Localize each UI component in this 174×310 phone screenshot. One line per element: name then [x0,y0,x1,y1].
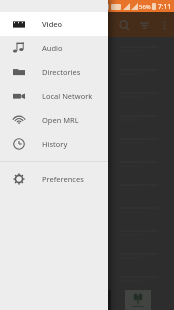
button[interactable] [0,198,174,221]
staticText: 56% [139,3,151,11]
staticText: Local Network [42,91,93,101]
button[interactable]: More options [154,15,174,35]
button[interactable] [0,152,174,175]
button[interactable] [0,83,174,106]
button[interactable]: Preferences [0,167,108,191]
button[interactable] [0,60,174,83]
button[interactable]: Local Network [0,84,108,108]
button[interactable]: Open MRL [0,108,108,132]
staticText: Open MRL [42,115,79,125]
button[interactable] [0,244,174,267]
button[interactable]: Audio [0,36,108,60]
button[interactable] [0,221,174,244]
staticText: Preferences [42,174,84,184]
button[interactable]: Search [114,15,134,35]
button[interactable]: Directories [0,60,108,84]
button[interactable] [0,267,174,290]
staticText: Video [42,19,63,29]
staticText: Audio [42,43,63,53]
button[interactable] [0,106,174,129]
button[interactable]: Sort [134,15,154,35]
staticText: Directories [42,67,81,77]
button[interactable] [0,129,174,152]
button[interactable] [0,175,174,198]
button[interactable] [0,0,174,310]
staticText: History [42,139,68,149]
staticText: 7:11 [158,2,171,11]
button[interactable] [0,290,174,310]
button[interactable] [0,37,174,60]
button[interactable]: History [0,132,108,156]
button[interactable]: Video [0,12,108,36]
